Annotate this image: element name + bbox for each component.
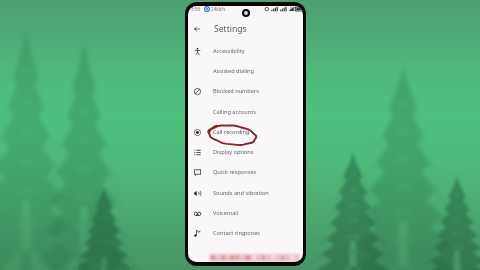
button[interactable]: Voicemail — [188, 203, 303, 223]
staticText: Assisted dialing — [213, 67, 254, 75]
staticText: 24kb/s — [211, 6, 226, 12]
button[interactable]: Display options — [188, 142, 303, 162]
staticText: Sounds and vibration — [213, 189, 269, 197]
button[interactable]: Sounds and vibration — [188, 183, 303, 203]
staticText: 3:56 — [191, 6, 201, 12]
button[interactable]: Call recording — [188, 122, 303, 142]
staticText: Display options — [213, 148, 254, 156]
button[interactable]: Calling accounts — [188, 102, 303, 122]
staticText: Blocked numbers — [213, 87, 259, 95]
staticText: Voicemail — [213, 209, 239, 217]
staticText: Calling accounts — [213, 108, 256, 116]
staticText: Accessibility — [213, 47, 245, 55]
button[interactable]: Back — [188, 19, 205, 38]
staticText: Settings — [214, 23, 247, 35]
button[interactable]: Accessibility — [188, 41, 303, 61]
button[interactable]: Quick responses — [188, 162, 303, 182]
button[interactable]: Contact ringtones — [188, 223, 303, 243]
staticText: Call recording — [213, 128, 250, 136]
staticText: Quick responses — [213, 168, 257, 176]
button[interactable]: Blocked numbers — [188, 81, 303, 101]
staticText: 80% — [290, 6, 300, 12]
button[interactable]: Assisted dialing — [188, 61, 303, 81]
staticText: Contact ringtones — [213, 229, 261, 237]
